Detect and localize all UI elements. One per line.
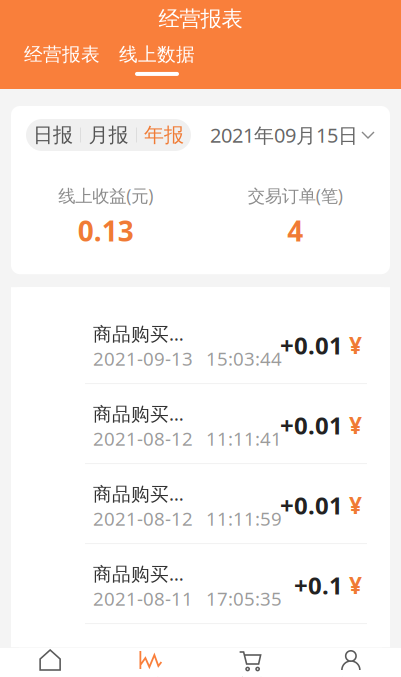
staticText: +0.01 [280,489,343,521]
staticText: ¥ [349,570,362,600]
staticText: +0.1 [294,569,343,601]
staticText: 15:03:44 [206,346,282,371]
staticText: 4 [287,212,303,249]
staticText: +0.01 [280,409,343,441]
staticText: 商城 [236,675,266,677]
button[interactable]: 年报 [137,119,191,151]
button[interactable]: 经营报表 [24,43,100,76]
staticText: 11:11:41 [206,426,282,451]
staticText: 2021-08-12 [93,506,193,531]
staticText: ¥ [349,330,362,360]
button[interactable]: 商城 [200,648,301,677]
staticText: 11:11:59 [206,506,282,531]
button[interactable]: 商品购买… [11,544,390,623]
button[interactable]: 2021年09月15日 [210,122,375,148]
staticText: +0.01 [280,329,343,361]
staticText: 2021年09月15日 [210,122,358,148]
button[interactable]: 月报 [81,119,136,151]
button[interactable]: 日报 [26,119,80,151]
staticText: 线上收益(元) [58,184,153,207]
staticText: 17:05:35 [206,586,282,611]
staticText: 商品购买… [93,321,184,346]
staticText: 0.13 [78,212,134,249]
staticText: 线上数据 [119,43,195,66]
button[interactable]: 线上数据 [119,43,195,76]
staticText: 日报 [33,123,73,147]
button[interactable]: 报表 [100,648,200,677]
staticText: 交易订单(笔) [248,184,343,207]
staticText: 经营报表 [158,6,242,32]
staticText: 月报 [88,123,128,147]
staticText: ¥ [349,490,362,520]
button[interactable]: 商品购买… [11,384,390,463]
button[interactable]: 商品购买… [11,304,390,383]
staticText: 经营报表 [24,43,100,66]
staticText: 年报 [144,123,184,147]
staticText: 商品购买… [93,561,184,586]
staticText: 商品购买… [93,401,184,426]
button[interactable]: 我的 [301,648,401,677]
staticText: 商品购买… [93,481,184,506]
staticText: ¥ [349,410,362,440]
staticText: 2021-08-12 [93,426,193,451]
button[interactable]: 商品购买… [11,464,390,543]
staticText: 2021-08-11 [93,586,193,611]
staticText: 2021-09-13 [93,346,193,371]
button[interactable]: 首页 [0,648,100,677]
